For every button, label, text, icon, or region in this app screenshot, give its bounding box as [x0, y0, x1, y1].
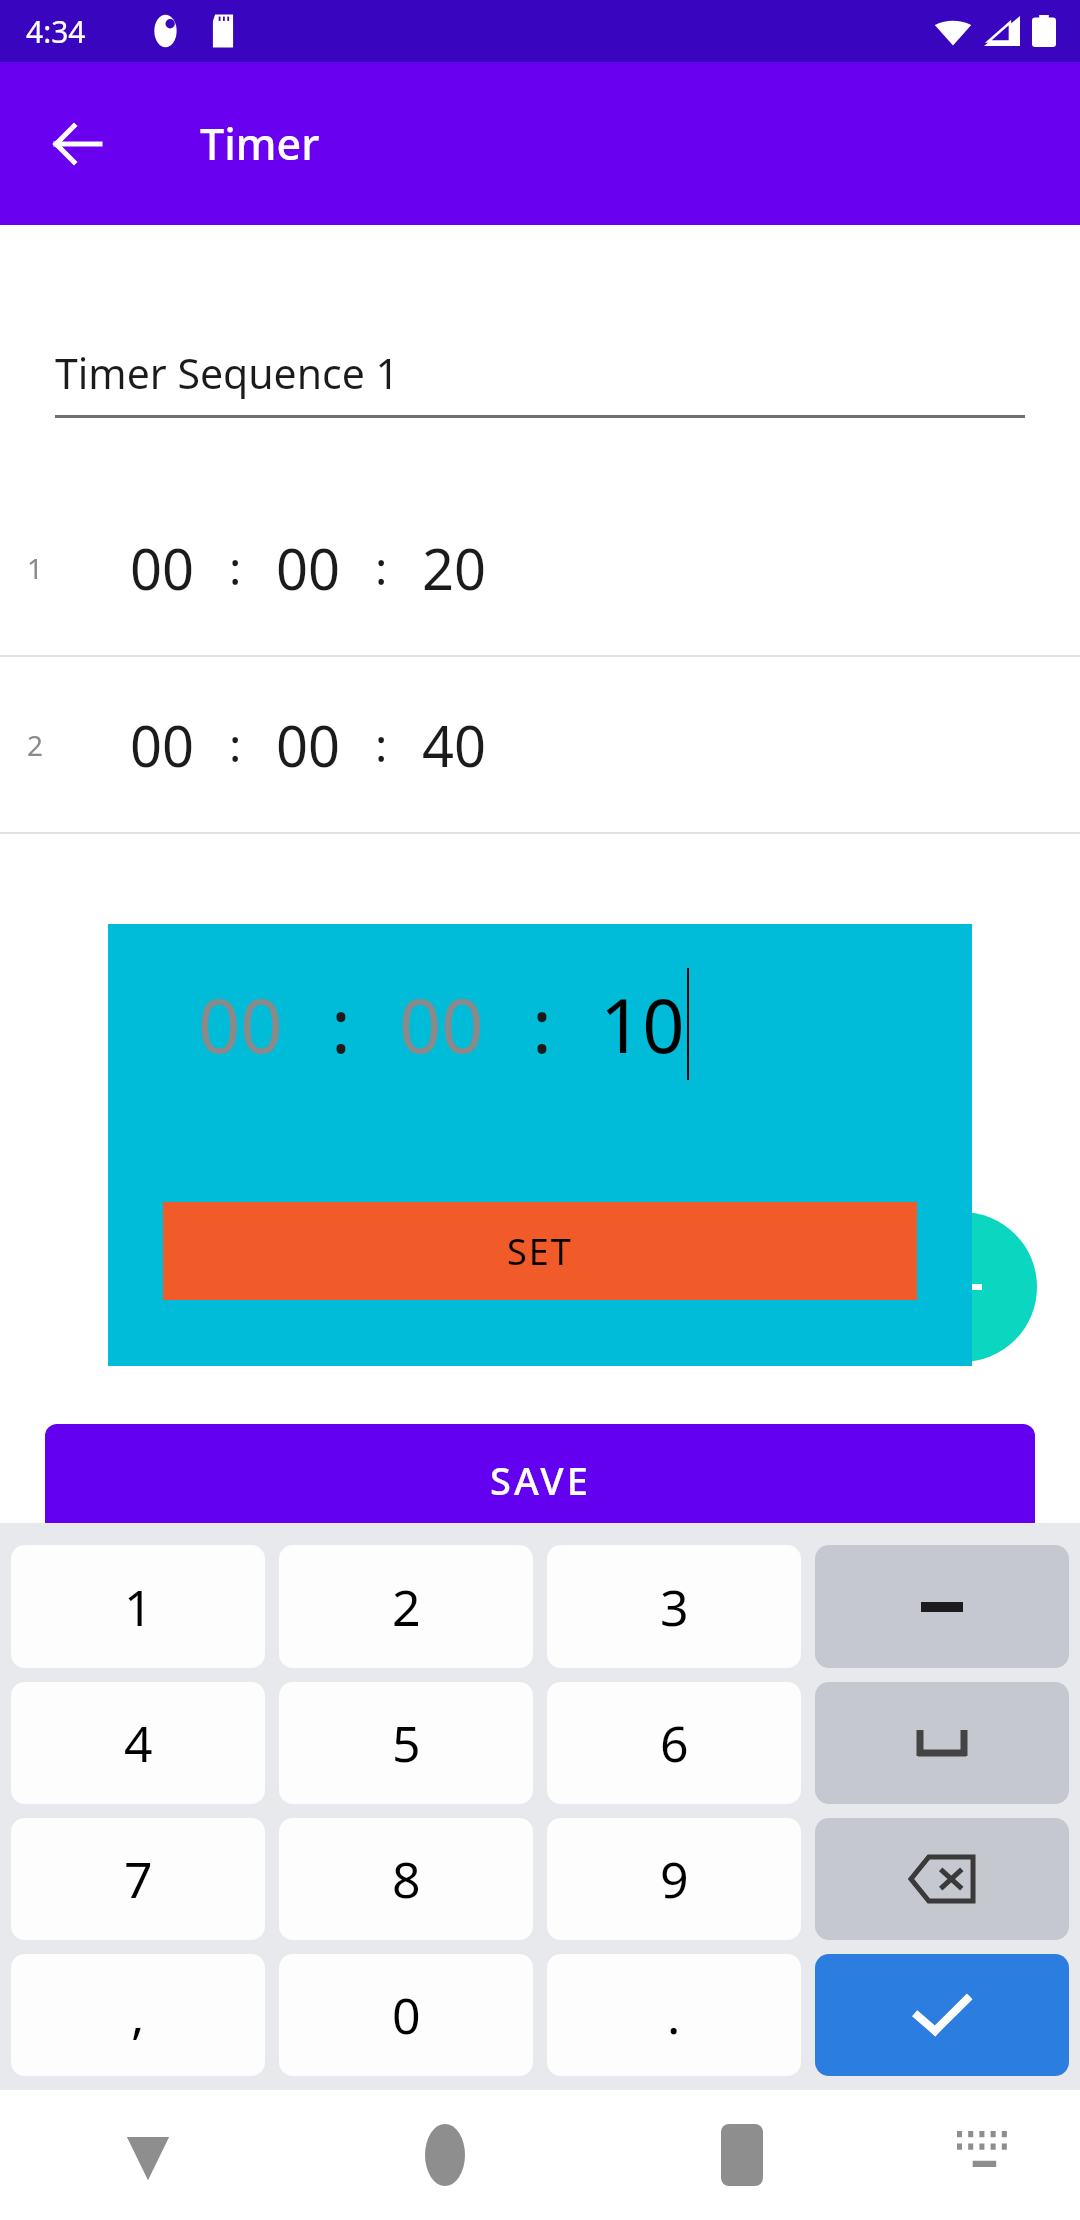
staticText: 5 [392, 1709, 421, 1777]
button[interactable]: 7 [11, 1818, 265, 1940]
button[interactable]: 9 [547, 1818, 801, 1940]
staticText: : [375, 536, 388, 599]
button[interactable]: . [547, 1954, 801, 2076]
staticText: Timer Sequence 1 [55, 345, 399, 401]
staticText: : [375, 713, 388, 776]
staticText: 00 [130, 530, 195, 606]
button[interactable]: Switch keyboard [890, 2090, 1080, 2220]
staticText: : [229, 536, 242, 599]
staticText: 2 [27, 726, 44, 764]
staticText: . [667, 1981, 681, 2049]
button[interactable]: 8 [279, 1818, 533, 1940]
button[interactable]: Add timer [887, 1212, 1037, 1362]
staticText: 1 [27, 549, 44, 587]
staticText: 2 [392, 1573, 421, 1641]
staticText: 3 [660, 1573, 689, 1641]
button[interactable]: Space [815, 1682, 1069, 1804]
button[interactable]: , [11, 1954, 265, 2076]
button[interactable]: 1 [0, 480, 1080, 655]
staticText: 20 [422, 530, 487, 606]
staticText: SAVE [490, 1454, 591, 1506]
staticText: SET [507, 1227, 573, 1276]
button[interactable]: 6 [547, 1682, 801, 1804]
button[interactable]: Enter [815, 1954, 1069, 2076]
button[interactable]: SAVE [45, 1424, 1035, 1536]
staticText: 10 [600, 974, 685, 1075]
button[interactable]: Recents [593, 2090, 890, 2220]
staticText: 4:34 [26, 11, 86, 52]
button[interactable]: 5 [279, 1682, 533, 1804]
staticText: 8 [392, 1845, 421, 1913]
button[interactable]: 0 [279, 1954, 533, 2076]
staticText: 4 [124, 1709, 153, 1777]
button[interactable]: Hide keyboard [0, 2090, 296, 2220]
button[interactable]: 2 [0, 657, 1080, 832]
button[interactable]: 1 [11, 1545, 265, 1668]
button[interactable]: Backspace [815, 1818, 1069, 1940]
button[interactable]: 4 [11, 1682, 265, 1804]
button[interactable]: 3 [547, 1545, 801, 1668]
staticText: : [229, 713, 242, 776]
button[interactable]: 2 [279, 1545, 533, 1668]
button[interactable]: SET [163, 1202, 917, 1300]
button[interactable]: Minus [815, 1545, 1069, 1668]
staticText: : [532, 974, 552, 1075]
button[interactable]: 00 [198, 974, 283, 1075]
button[interactable]: 00 [399, 974, 484, 1075]
staticText: 0 [392, 1981, 421, 2049]
staticText: 00 [276, 707, 341, 783]
staticText: 6 [660, 1709, 689, 1777]
staticText: 40 [422, 707, 487, 783]
staticText: 9 [660, 1845, 689, 1913]
button[interactable]: Home [296, 2090, 593, 2220]
staticText: 00 [130, 707, 195, 783]
staticText: 00 [276, 530, 341, 606]
staticText: 7 [124, 1845, 153, 1913]
staticText: : [331, 974, 351, 1075]
button[interactable]: Timer Sequence 1 [55, 345, 1025, 418]
staticText: , [131, 1981, 145, 2049]
staticText: Timer [200, 114, 320, 173]
button[interactable]: 10 [600, 974, 685, 1075]
button[interactable]: Back [28, 94, 128, 194]
staticText: 1 [124, 1573, 153, 1641]
